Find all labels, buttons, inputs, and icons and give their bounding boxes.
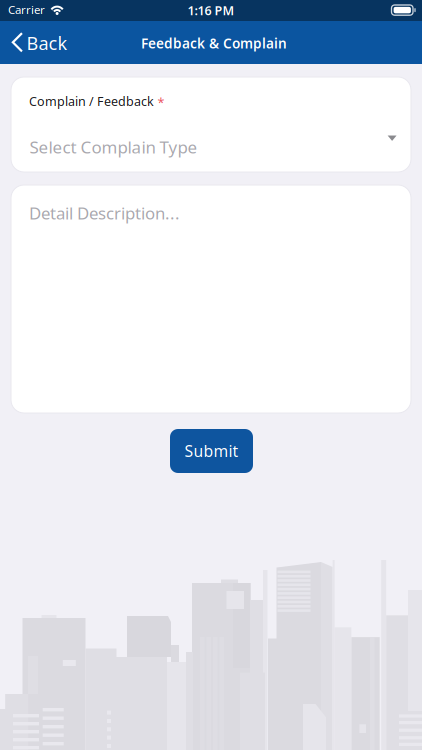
staticText: Detail Description... <box>29 201 180 224</box>
staticText: Select Complain Type <box>29 135 197 159</box>
button[interactable]: Back <box>0 21 72 64</box>
button[interactable]: Submit <box>170 429 253 473</box>
button[interactable]: Detail Description... <box>11 185 411 413</box>
button[interactable]: Complain / Feedback <box>11 77 411 172</box>
staticText: * <box>157 94 164 111</box>
staticText: 1:16 PM <box>187 2 234 19</box>
staticText: Complain / Feedback <box>29 92 154 110</box>
staticText: Back <box>26 31 67 55</box>
staticText: Submit <box>184 440 238 462</box>
staticText: Carrier <box>8 2 45 17</box>
staticText: Feedback & Complain <box>141 34 287 52</box>
